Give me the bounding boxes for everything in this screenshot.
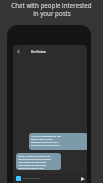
- staticText: Chat with people interested: [11, 1, 92, 9]
- button[interactable]: Send: [80, 176, 85, 181]
- button[interactable]: Attach photo: [16, 176, 21, 181]
- button[interactable]: Hi, am an experienced dog trainer with 4…: [29, 133, 87, 150]
- staticText: Erin Hudson: [31, 50, 47, 54]
- button[interactable]: Back: [13, 45, 87, 58]
- button[interactable]: Back: [15, 48, 22, 55]
- staticText: Type a message: [23, 177, 41, 180]
- staticText: Hello, I believe you meet the special re…: [18, 154, 52, 169]
- staticText: Hi, am an experienced dog trainer with 4…: [31, 134, 65, 146]
- staticText: in your posts: [33, 9, 71, 17]
- button[interactable]: Hello, I believe you meet the special re…: [16, 153, 61, 170]
